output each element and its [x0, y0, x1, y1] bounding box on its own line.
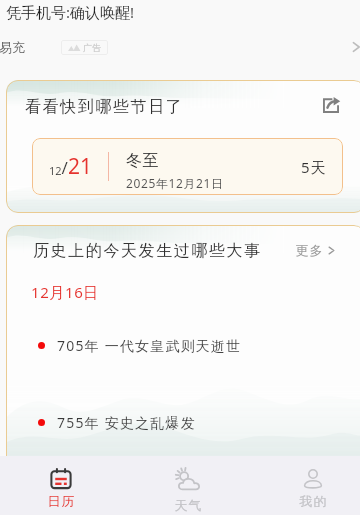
staticText: 5天: [301, 157, 327, 177]
button[interactable]: 分享: [320, 94, 342, 116]
staticText: 冬至: [126, 151, 160, 171]
staticText: 看看快到哪些节日了: [25, 97, 184, 117]
staticText: 12月16日: [31, 282, 99, 302]
button[interactable]: 705年 一代女皇武则天逝世: [38, 333, 360, 358]
staticText: 755年 安史之乱爆发: [57, 413, 196, 432]
staticText: 日历: [47, 493, 75, 509]
button[interactable]: 755年 安史之乱爆发: [38, 410, 360, 435]
button[interactable]: 日历: [31, 456, 91, 515]
button[interactable]: 我的: [283, 456, 343, 515]
button[interactable]: 易充: [0, 33, 360, 61]
staticText: 历史上的今天发生过哪些大事: [33, 241, 262, 261]
button[interactable]: 12/21: [32, 138, 343, 195]
staticText: 2025年12月21日: [126, 175, 224, 191]
staticText: 易充: [0, 39, 25, 55]
staticText: 天气: [174, 497, 202, 513]
staticText: 705年 一代女皇武则天逝世: [57, 336, 242, 355]
button[interactable]: 历史上的今天发生过哪些大事: [6, 225, 360, 475]
button[interactable]: 看看快到哪些节日了: [6, 80, 360, 213]
staticText: 凭手机号:确认唤醒!: [6, 2, 135, 22]
button[interactable]: 天气: [158, 456, 218, 515]
other: 查看详情: [348, 38, 360, 56]
staticText: 我的: [299, 493, 327, 509]
button[interactable]: 更多: [295, 242, 338, 258]
staticText: 更多: [295, 242, 323, 258]
staticText: 广告: [83, 42, 101, 53]
staticText: 12/21: [49, 152, 92, 181]
